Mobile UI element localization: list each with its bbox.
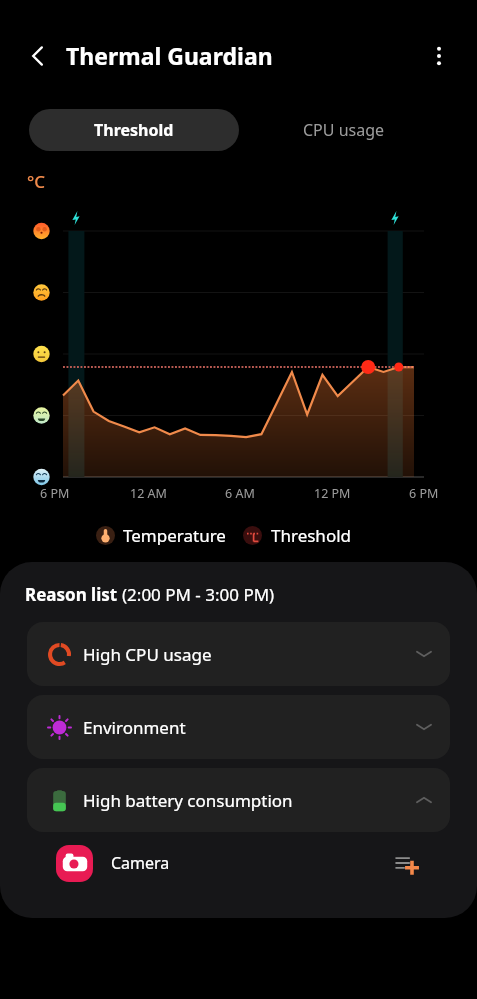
- staticText: 12 PM: [314, 485, 351, 502]
- staticText: °C: [27, 170, 46, 193]
- staticText: 6 PM: [40, 485, 70, 502]
- button[interactable]: More options: [417, 34, 461, 78]
- staticText: Threshold: [94, 119, 174, 141]
- staticText: 6 PM: [409, 485, 439, 502]
- staticText: 6 AM: [225, 485, 255, 502]
- button[interactable]: Environment: [27, 695, 450, 759]
- staticText: High CPU usage: [83, 643, 212, 666]
- button[interactable]: CPU usage: [239, 109, 449, 151]
- staticText: High battery consumption: [83, 789, 293, 812]
- staticText: Thermal Guardian: [66, 40, 273, 71]
- staticText: CPU usage: [303, 119, 385, 141]
- staticText: Camera: [111, 852, 170, 874]
- button[interactable]: High CPU usage: [27, 622, 450, 686]
- button[interactable]: High battery consumption: [27, 768, 450, 832]
- staticText: (2:00 PM - 3:00 PM): [122, 583, 275, 606]
- staticText: Reason list: [25, 583, 122, 606]
- staticText: Environment: [83, 716, 186, 739]
- staticText: Threshold: [271, 524, 352, 545]
- staticText: 12 AM: [130, 485, 167, 502]
- button[interactable]: Back: [16, 34, 60, 78]
- button[interactable]: Camera: [0, 835, 477, 891]
- button[interactable]: Add to list: [391, 848, 421, 878]
- button[interactable]: Threshold: [29, 109, 239, 151]
- staticText: Temperature: [123, 524, 226, 545]
